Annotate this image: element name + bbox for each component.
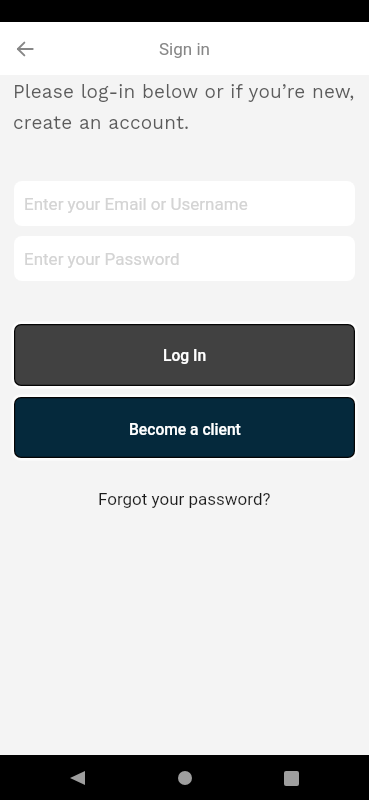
button[interactable]: Recent apps — [269, 756, 313, 800]
staticText: Enter your Password — [24, 249, 180, 269]
button[interactable]: Back — [8, 32, 41, 65]
button[interactable]: Enter your Password — [14, 236, 355, 281]
button[interactable]: Log In — [14, 324, 355, 386]
button[interactable]: Forgot your password? — [90, 486, 279, 512]
staticText: Log In — [163, 347, 207, 365]
staticText: Become a client — [129, 421, 241, 439]
staticText: Forgot your password? — [98, 489, 271, 509]
staticText: Sign in — [159, 39, 210, 59]
button[interactable]: Back — [55, 756, 99, 800]
staticText: Enter your Email or Username — [24, 194, 248, 214]
staticText: Please log-in below or if you’re new, cr… — [13, 80, 355, 133]
button[interactable]: Enter your Email or Username — [14, 181, 355, 226]
button[interactable]: Become a client — [14, 397, 355, 458]
button[interactable]: Home — [163, 756, 207, 800]
